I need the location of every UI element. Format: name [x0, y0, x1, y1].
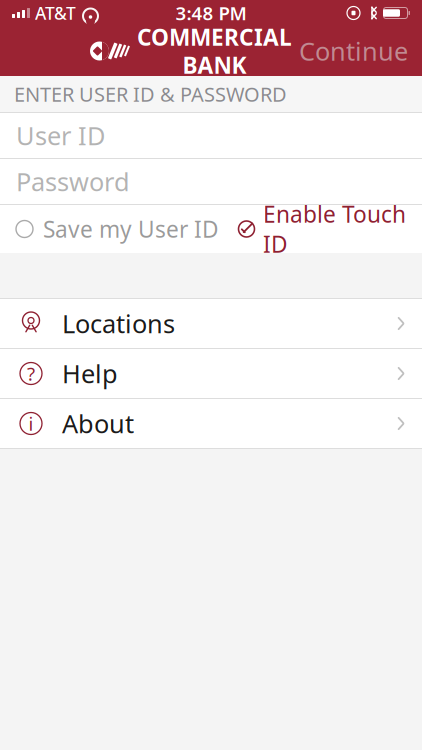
button[interactable]: i [0, 399, 422, 449]
staticText: Continue [299, 34, 408, 68]
staticText: Save my User ID [43, 214, 219, 244]
staticText: User ID [16, 119, 105, 152]
staticText: i [28, 411, 33, 436]
button[interactable]: Enable Touch ID [237, 189, 406, 269]
staticText: Help [62, 357, 118, 390]
button[interactable]: ? [0, 349, 422, 399]
staticText: ? [27, 361, 35, 386]
staticText: BANK [182, 50, 246, 80]
staticText: Locations [62, 307, 175, 340]
staticText: COMMERCIAL [137, 22, 292, 52]
staticText: Enable Touch ID [263, 199, 406, 259]
staticText: ENTER USER ID & PASSWORD [14, 81, 287, 107]
button[interactable]: Save my User ID [16, 204, 219, 254]
button[interactable]: Continue [285, 24, 422, 78]
button[interactable]: Locations [0, 299, 422, 349]
staticText: About [62, 407, 134, 440]
staticText: Password [16, 165, 130, 198]
staticText: AT&T [35, 1, 76, 24]
staticText: 3:48 PM [175, 1, 246, 25]
